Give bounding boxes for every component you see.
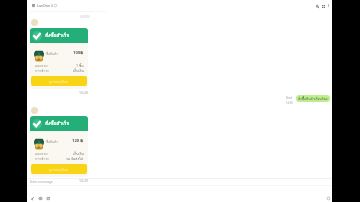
button[interactable]: สั่งซื้อสินค้าเรียบร้อย <box>296 95 330 102</box>
button[interactable]: Open gallery <box>45 195 52 202</box>
staticText: 1 ชิ้น <box>76 63 84 69</box>
button[interactable]: Profile picture <box>31 19 38 26</box>
staticText: เก็บเงิน <box>73 151 84 157</box>
button[interactable]: สั่งซื้อสำเร็จ <box>30 116 88 177</box>
staticText: 14:30 <box>286 101 293 105</box>
staticText: ยอดรวม <box>35 63 48 69</box>
button[interactable]: สั่งซื้อสำเร็จ <box>30 28 88 89</box>
staticText: ชื่อสินค้า <box>46 139 59 144</box>
staticText: 14:28 <box>79 90 88 95</box>
staticText: 4 <box>51 4 53 8</box>
staticText: 100฿ <box>73 50 84 56</box>
button[interactable]: Albums <box>320 3 326 9</box>
staticText: สั่งซื้อสินค้าเรียบร้อย <box>298 96 328 101</box>
button[interactable]: More options <box>326 3 331 8</box>
staticText: LuvOne <box>37 3 50 8</box>
button[interactable]: Profile picture <box>31 107 38 114</box>
staticText: การชำระ <box>35 156 50 162</box>
staticText: ดูรายละเอียด <box>49 79 69 84</box>
button[interactable]: ดูรายละเอียด <box>31 76 87 86</box>
staticText: 14:29 <box>79 178 88 183</box>
staticText: Read <box>286 96 293 100</box>
staticText: ชื่อสินค้า <box>46 51 59 56</box>
staticText: 120 ฿ <box>72 138 84 144</box>
button[interactable]: Take photo <box>37 195 44 202</box>
staticText: สั่งซื้อสำเร็จ <box>45 119 70 127</box>
staticText: รอ จัดส่งไป <box>66 156 84 162</box>
staticText: การชำระ <box>35 68 50 74</box>
staticText: ดูรายละเอียด <box>49 167 69 172</box>
button[interactable]: ดูรายละเอียด <box>31 164 87 174</box>
staticText: สั่งซื้อสำเร็จ <box>45 31 70 39</box>
button[interactable]: Search <box>314 3 320 9</box>
button[interactable]: Emoji <box>325 195 332 202</box>
button[interactable]: Attach file <box>29 195 36 202</box>
staticText: ยอดรวม <box>35 151 48 157</box>
staticText: เก็บเงิน <box>73 68 84 74</box>
staticText: Enter a message <box>30 180 53 184</box>
